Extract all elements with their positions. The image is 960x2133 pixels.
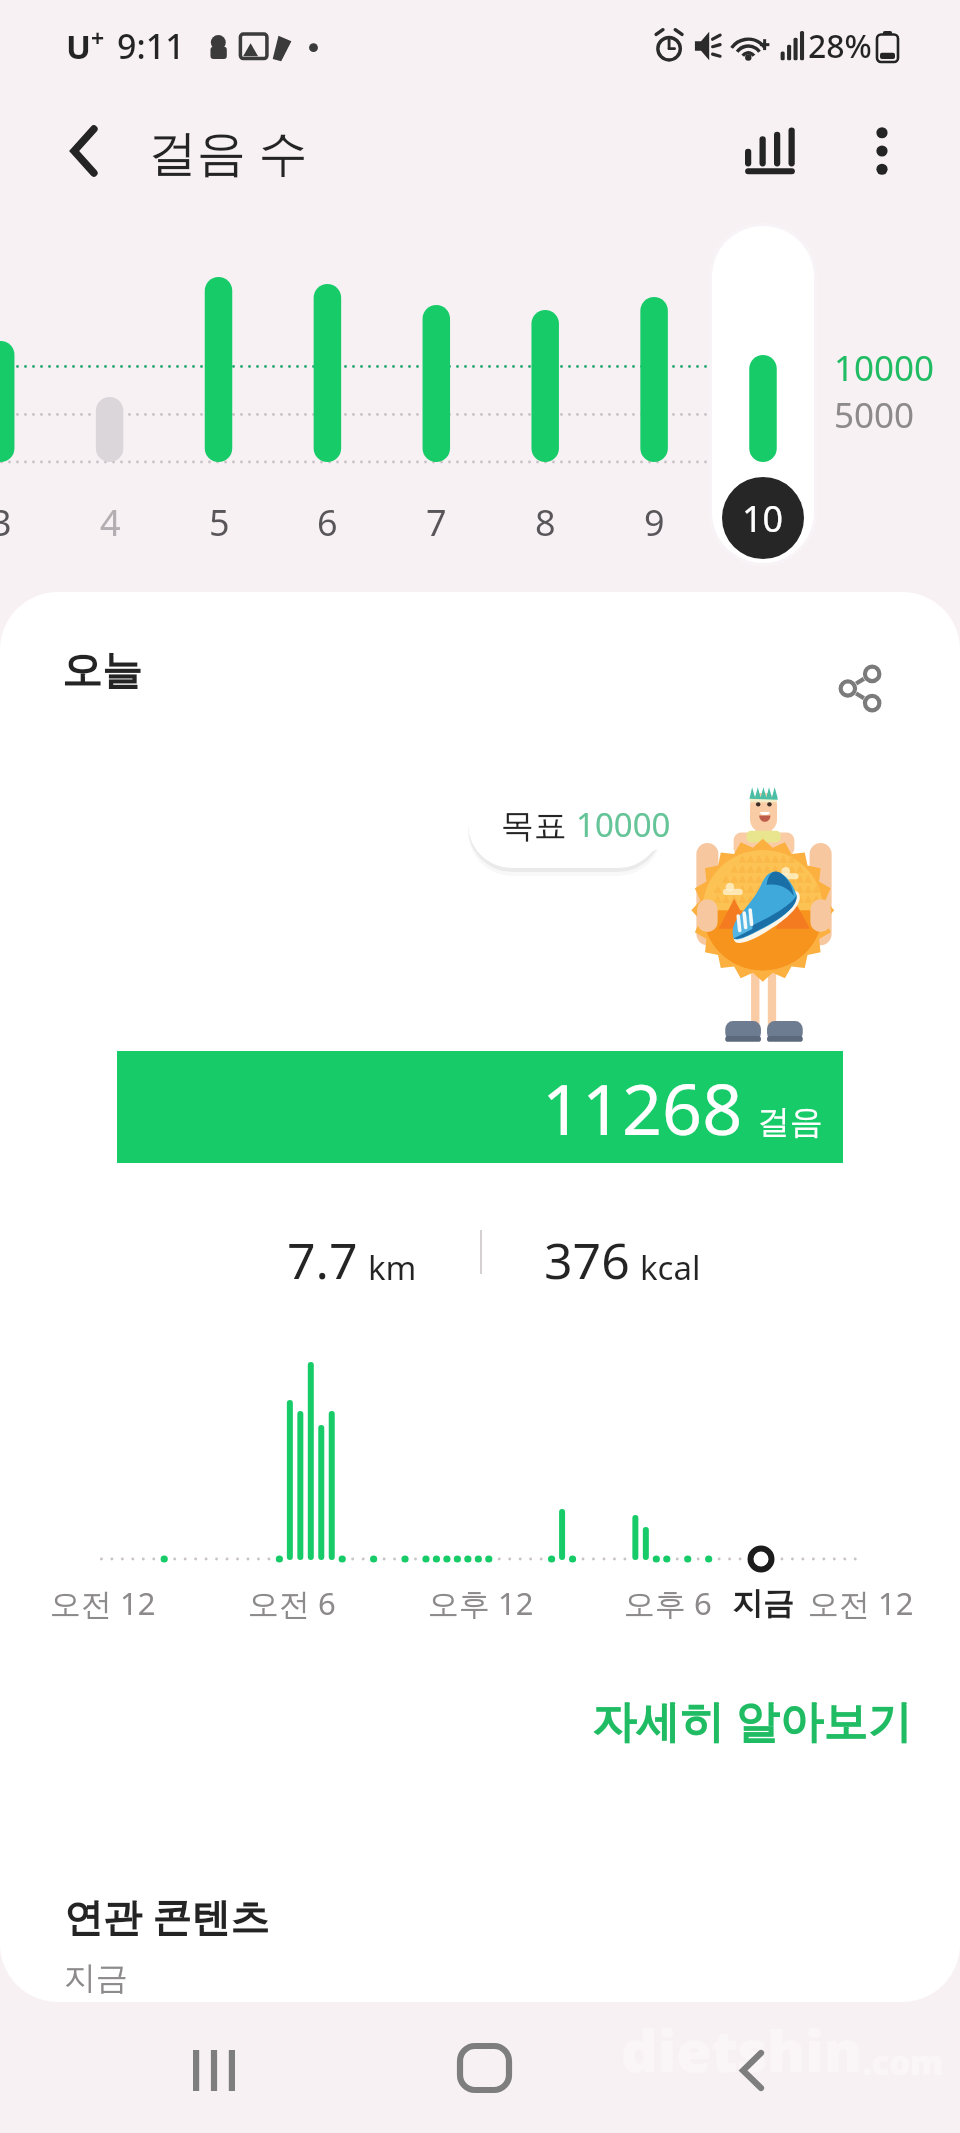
staticText: 지금	[64, 1958, 128, 1998]
button[interactable]: More options	[826, 95, 938, 207]
staticText: 9:11	[117, 23, 185, 69]
staticText: 오전 12	[808, 1582, 914, 1624]
staticText: 오후 12	[428, 1582, 534, 1624]
staticText: km	[368, 1245, 417, 1290]
staticText: kcal	[640, 1245, 701, 1290]
staticText: 4	[100, 498, 121, 547]
staticText: 지금	[732, 1584, 794, 1623]
staticText: 오전 12	[50, 1582, 156, 1624]
button[interactable]: 연관 콘텐츠	[0, 1872, 960, 2000]
staticText: 11268	[542, 1060, 743, 1155]
staticText: dietshin	[621, 2011, 862, 2089]
staticText: 오후 6	[624, 1582, 712, 1624]
button[interactable]: Chart	[714, 95, 826, 207]
button[interactable]: 7	[391, 493, 481, 551]
staticText: 오전 6	[248, 1582, 336, 1624]
button[interactable]: 자세히 알아보기	[592, 1680, 932, 1760]
button[interactable]: Back	[26, 93, 142, 209]
button[interactable]: 6	[282, 493, 372, 551]
staticText: 10000	[576, 802, 671, 847]
staticText: 5	[209, 498, 230, 547]
staticText: 걸음 수	[148, 118, 308, 185]
staticText: +	[91, 22, 105, 53]
button[interactable]: 4	[65, 493, 155, 551]
staticText: 연관 콘텐츠	[64, 1889, 270, 1942]
staticText: 7.7	[287, 1226, 358, 1294]
staticText: 7	[426, 498, 447, 547]
button[interactable]: Home	[419, 2003, 549, 2133]
button[interactable]: Back	[687, 2005, 817, 2133]
staticText: 6	[317, 498, 338, 547]
staticText: 376	[544, 1226, 630, 1294]
staticText: 8	[535, 498, 556, 547]
staticText: 9	[644, 498, 665, 547]
staticText: 걸음	[757, 1101, 823, 1143]
staticText: U	[66, 24, 91, 69]
staticText: 28%	[808, 24, 872, 68]
button[interactable]: 11268	[117, 1051, 843, 1163]
staticText: 10	[742, 494, 784, 543]
button[interactable]: Day 10	[712, 226, 814, 563]
button[interactable]: 8	[500, 493, 590, 551]
button[interactable]: 3	[0, 493, 46, 551]
staticText: 오늘	[62, 645, 142, 695]
button[interactable]: 5	[174, 493, 264, 551]
staticText: 자세히 알아보기	[592, 1690, 912, 1750]
staticText: 5000	[834, 391, 915, 439]
staticText: 3	[0, 498, 12, 547]
button[interactable]: Share	[820, 648, 900, 728]
staticText: 목표	[501, 802, 576, 847]
button[interactable]: 9	[609, 493, 699, 551]
staticText: 10000	[834, 344, 935, 392]
button[interactable]: Recent apps	[149, 2005, 279, 2133]
